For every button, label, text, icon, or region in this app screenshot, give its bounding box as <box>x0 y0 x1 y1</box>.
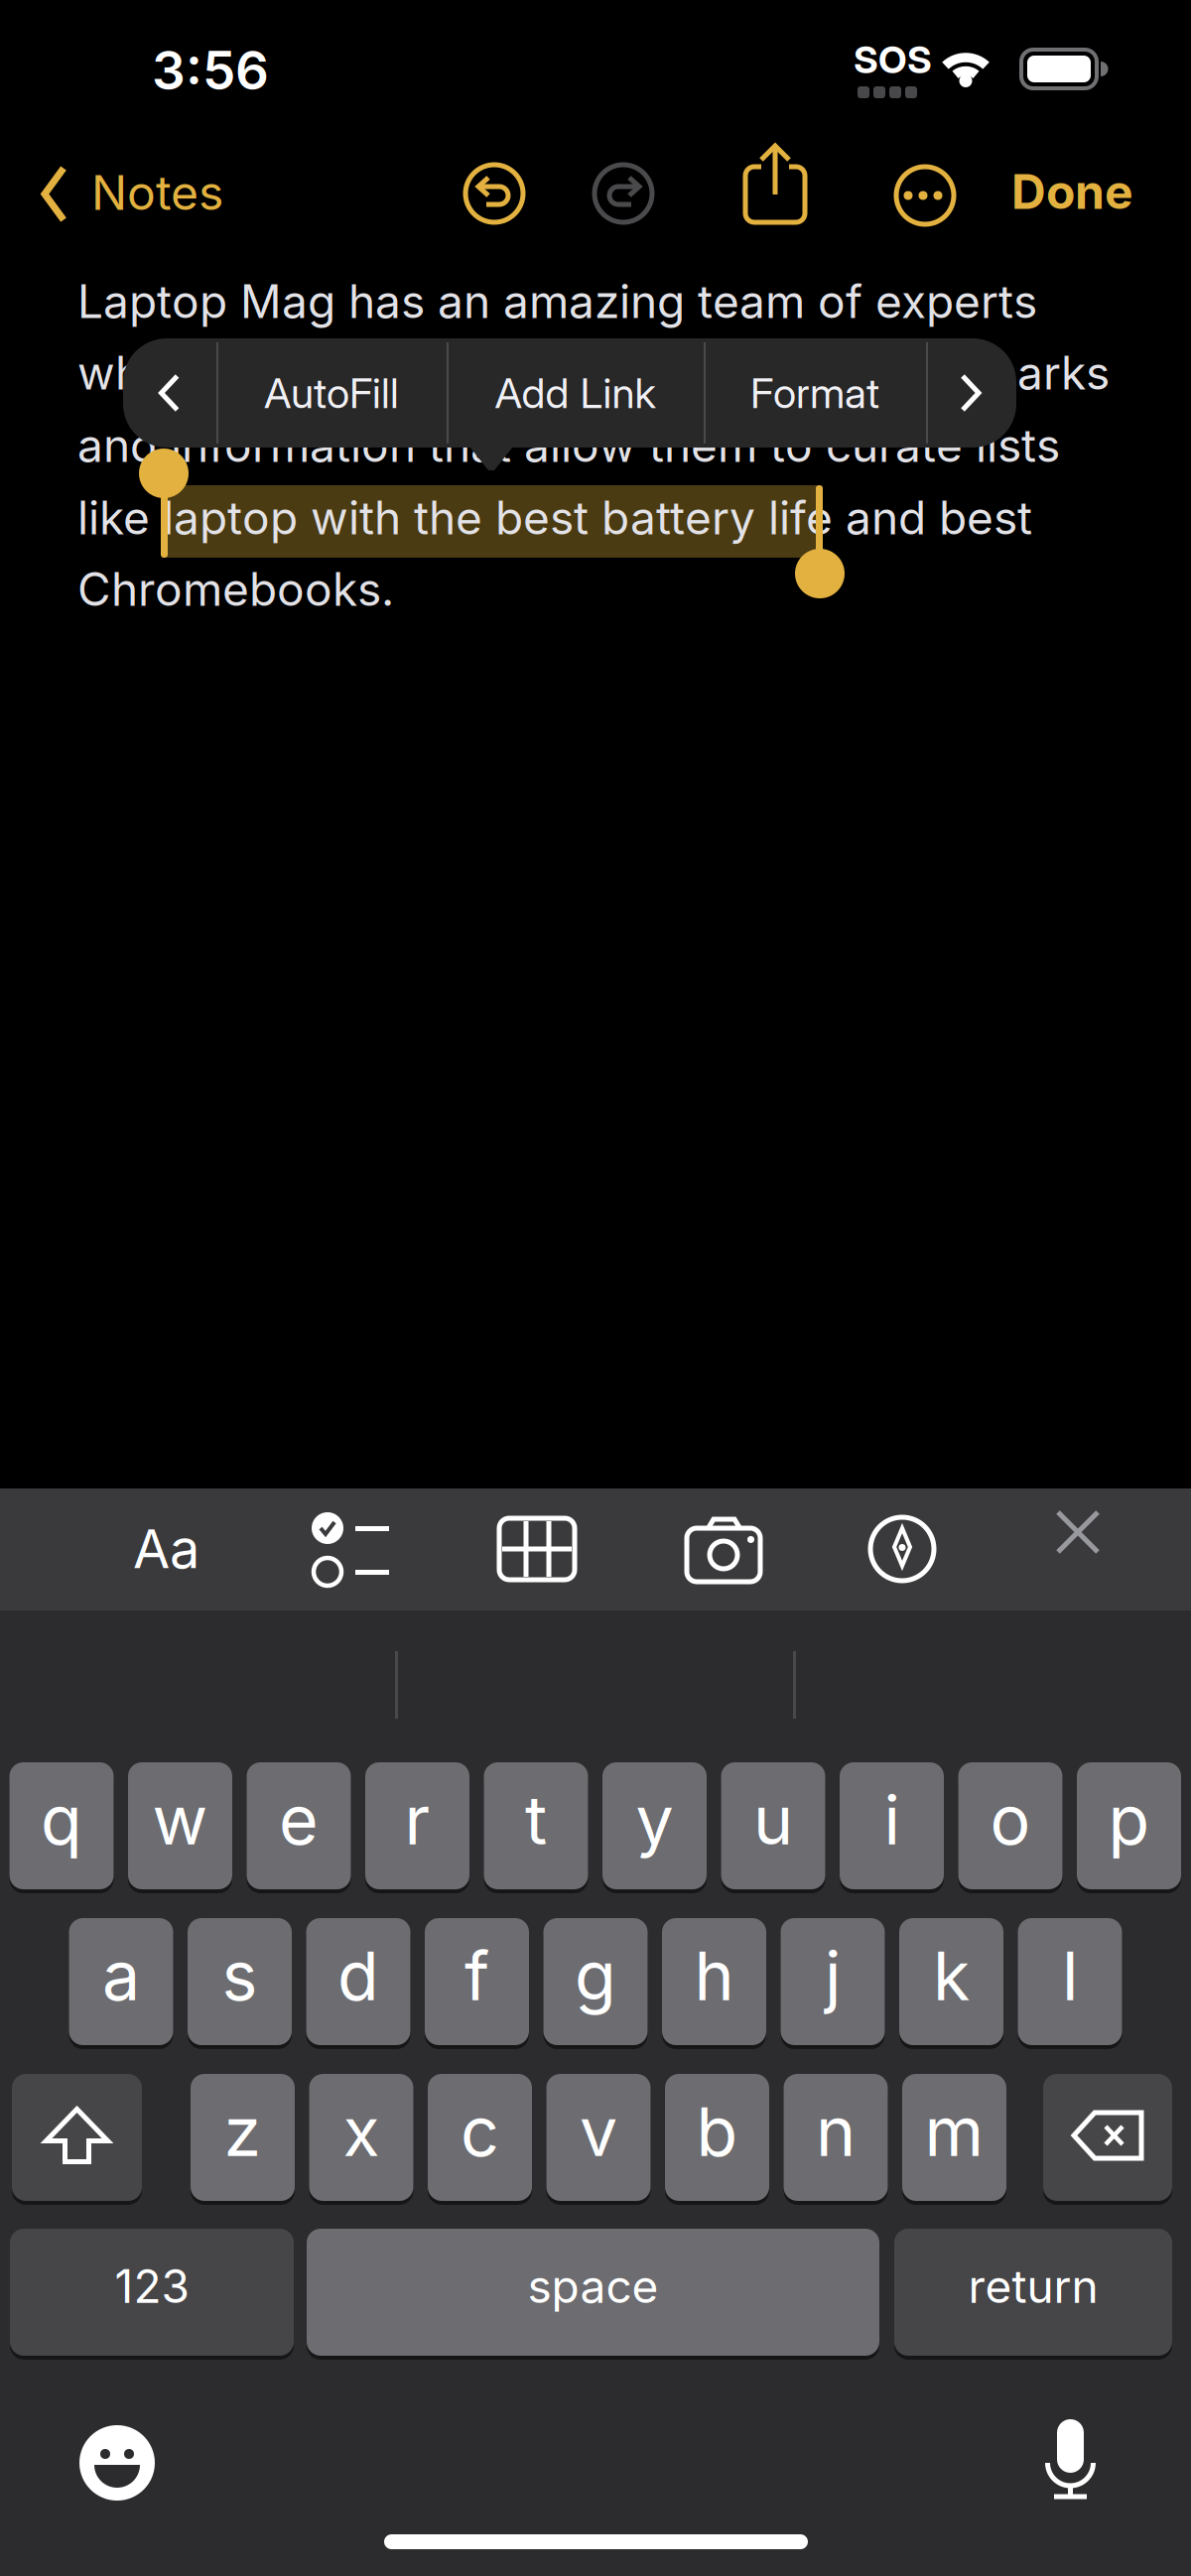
button[interactable]: h <box>662 1916 766 2047</box>
button[interactable]: c <box>428 2072 532 2203</box>
staticText: z <box>224 2091 262 2172</box>
staticText: space <box>528 2259 659 2314</box>
button[interactable]: More menu items <box>926 338 1016 448</box>
button[interactable]: 123 <box>10 2227 294 2358</box>
staticText: u <box>753 1779 793 1861</box>
button[interactable]: Emoji <box>79 2425 155 2501</box>
button[interactable]: Format <box>133 1516 199 1581</box>
button[interactable]: i <box>840 1760 944 1891</box>
button[interactable]: More <box>892 163 954 224</box>
button[interactable]: Delete <box>1043 2072 1172 2203</box>
button[interactable]: m <box>902 2072 1006 2203</box>
button[interactable]: j <box>781 1916 885 2047</box>
staticText: o <box>990 1779 1031 1861</box>
staticText: g <box>575 1935 616 2017</box>
button[interactable]: y <box>602 1760 707 1891</box>
button[interactable]: Checklist <box>312 1512 389 1588</box>
staticText: y <box>636 1779 673 1861</box>
staticText: l <box>1062 1935 1078 2017</box>
staticText: r <box>404 1779 430 1861</box>
button[interactable]: k <box>899 1916 1003 2047</box>
button[interactable]: o <box>958 1760 1062 1891</box>
staticText: m <box>925 2091 984 2172</box>
button[interactable]: z <box>191 2072 295 2203</box>
staticText: Chromebooks. <box>77 562 394 617</box>
staticText: x <box>343 2091 380 2172</box>
button[interactable]: n <box>784 2072 888 2203</box>
staticText: k <box>933 1935 970 2017</box>
button[interactable]: e <box>247 1760 351 1891</box>
staticText: e <box>279 1779 319 1861</box>
staticText: i <box>884 1779 900 1861</box>
button[interactable]: x <box>309 2072 413 2203</box>
button[interactable]: Format <box>704 338 926 448</box>
button[interactable]: b <box>665 2072 769 2203</box>
staticText: SOS <box>854 37 932 82</box>
button[interactable]: Dismiss keyboard <box>1056 1510 1100 1554</box>
staticText: v <box>580 2091 617 2172</box>
button[interactable]: g <box>543 1916 648 2047</box>
staticText: n <box>816 2091 856 2172</box>
button[interactable]: Redo <box>593 163 654 224</box>
button[interactable]: l <box>1018 1916 1122 2047</box>
button[interactable]: u <box>721 1760 825 1891</box>
button[interactable]: Add Link <box>447 338 704 448</box>
staticText: like laptop with the best battery life a… <box>77 490 1032 545</box>
button[interactable]: w <box>128 1760 232 1891</box>
staticText: s <box>222 1935 258 2017</box>
button[interactable]: t <box>484 1760 588 1891</box>
staticText: j <box>825 1935 841 2017</box>
button[interactable]: Notes <box>42 166 223 223</box>
staticText: Done <box>1011 163 1133 220</box>
button[interactable]: q <box>9 1760 114 1891</box>
button[interactable]: return <box>894 2227 1172 2358</box>
staticText: f <box>464 1935 489 2017</box>
staticText: p <box>1108 1779 1150 1861</box>
staticText: t <box>525 1779 547 1861</box>
button[interactable]: a <box>69 1916 173 2047</box>
button[interactable]: s <box>188 1916 292 2047</box>
button[interactable]: space <box>307 2227 879 2358</box>
button[interactable]: Markup <box>870 1517 934 1581</box>
button[interactable]: Table <box>499 1518 575 1580</box>
staticText: d <box>337 1935 379 2017</box>
button[interactable]: r <box>365 1760 469 1891</box>
staticText: and information that allow them to curat… <box>77 418 1060 473</box>
staticText: q <box>41 1779 82 1861</box>
button[interactable]: Previous menu items <box>123 338 216 448</box>
button[interactable]: Done <box>1011 163 1133 220</box>
staticText: c <box>461 2091 499 2172</box>
staticText: Add Link <box>495 368 656 418</box>
staticText: w <box>152 1779 208 1861</box>
staticText: Laptop Mag has an amazing team of expert… <box>77 274 1037 329</box>
staticText: Format <box>750 368 879 418</box>
staticText: Aa <box>133 1516 199 1581</box>
staticText: who have years of experience with benchm… <box>77 345 1110 401</box>
button[interactable]: p <box>1077 1760 1181 1891</box>
button[interactable]: Dictation <box>1040 2419 1101 2500</box>
staticText: 123 <box>115 2259 189 2314</box>
staticText: AutoFill <box>264 368 399 418</box>
button[interactable]: Share <box>743 143 807 224</box>
button[interactable]: Shift <box>12 2072 142 2203</box>
staticText: a <box>102 1935 140 2017</box>
staticText: h <box>694 1935 734 2017</box>
staticText: Notes <box>91 164 223 221</box>
staticText: b <box>696 2091 738 2172</box>
button[interactable]: f <box>425 1916 529 2047</box>
staticText: return <box>968 2259 1098 2314</box>
button[interactable]: AutoFill <box>216 338 447 448</box>
staticText: 3:56 <box>152 39 269 102</box>
button[interactable]: Camera <box>687 1516 760 1582</box>
button[interactable]: Undo <box>463 163 525 224</box>
button[interactable]: d <box>306 1916 410 2047</box>
button[interactable]: v <box>546 2072 651 2203</box>
